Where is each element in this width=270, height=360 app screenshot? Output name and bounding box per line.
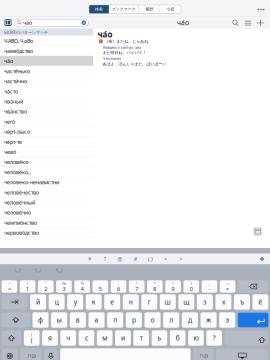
button[interactable]: в xyxy=(70,312,86,328)
button[interactable]: а xyxy=(88,312,105,328)
button[interactable]: о xyxy=(144,312,161,328)
button[interactable]: чва́нство xyxy=(0,106,93,117)
button[interactable]: Shift xyxy=(2,331,21,345)
button[interactable]: чва́ный xyxy=(0,96,93,106)
button[interactable]: м xyxy=(97,330,112,346)
button[interactable]: челове́чество xyxy=(0,187,93,197)
button[interactable]: Keyboard settings xyxy=(258,253,266,264)
button[interactable]: д xyxy=(182,312,198,328)
button[interactable]: ? xyxy=(97,253,112,264)
button[interactable]: у xyxy=(67,294,83,310)
button[interactable]: Caps lock xyxy=(2,313,30,327)
button[interactable]: б xyxy=(170,330,185,346)
button[interactable]: ! xyxy=(20,280,35,293)
button[interactable]: х xyxy=(215,294,231,310)
button[interactable]: челове́чный xyxy=(0,197,93,207)
button[interactable]: ✳ xyxy=(82,253,97,264)
button[interactable]: ч xyxy=(60,330,76,346)
button[interactable]: л xyxy=(163,312,179,328)
button[interactable]: Switch keyboard xyxy=(2,349,18,360)
button[interactable]: _ xyxy=(202,280,217,293)
button[interactable]: чёрт-те xyxy=(0,137,93,147)
button[interactable]: щ xyxy=(178,294,194,310)
button[interactable]: Shift xyxy=(225,331,268,345)
button[interactable]: More xyxy=(257,9,264,10)
button[interactable]: ча́сто xyxy=(0,86,93,96)
button[interactable]: е xyxy=(104,294,120,310)
button[interactable]: я xyxy=(42,330,58,346)
button[interactable]: челове́ко... xyxy=(0,167,93,177)
button[interactable]: : xyxy=(92,280,108,293)
button[interactable]: з xyxy=(197,294,213,310)
button[interactable]: Open in window xyxy=(253,227,262,236)
button[interactable]: ш xyxy=(160,294,176,310)
button[interactable]: ? xyxy=(206,330,222,346)
button[interactable]: 履歴 xyxy=(139,5,160,13)
button[interactable]: ( ) xyxy=(143,253,158,264)
button[interactable]: н xyxy=(123,294,139,310)
button[interactable]: " xyxy=(38,280,54,293)
button[interactable]: и xyxy=(115,330,131,346)
button[interactable]: * xyxy=(147,280,163,293)
button[interactable]: .?123 xyxy=(193,348,213,360)
button[interactable]: > xyxy=(2,280,17,293)
button[interactable] xyxy=(60,348,190,360)
button[interactable]: # xyxy=(128,253,143,264)
button[interactable]: человеко-ненавистни xyxy=(0,177,93,187)
button[interactable]: часте́нько xyxy=(0,66,93,76)
button[interactable]: ь xyxy=(152,330,167,346)
button[interactable]: челове́чно xyxy=(0,207,93,218)
button[interactable]: части́чно xyxy=(0,76,93,86)
button[interactable]: Undo xyxy=(13,264,22,276)
button[interactable]: г xyxy=(141,294,157,310)
button[interactable]: Add bookmark xyxy=(257,20,264,26)
button[interactable]: ; xyxy=(111,280,126,293)
button[interactable]: Tab xyxy=(2,295,28,309)
button[interactable]: Paste xyxy=(55,264,64,276)
button[interactable]: ж xyxy=(200,312,217,328)
button[interactable]: ( xyxy=(165,280,181,293)
button[interactable]: ц xyxy=(49,294,65,310)
button[interactable]: ЧАВО, ЧаВо xyxy=(0,36,93,46)
button[interactable]: № xyxy=(56,280,72,293)
button[interactable]: Dictate xyxy=(44,349,58,360)
button[interactable]: % xyxy=(74,280,90,293)
button[interactable]: т xyxy=(133,330,149,346)
button[interactable]: чёрт-лы́со xyxy=(0,127,93,137)
button[interactable]: с xyxy=(79,330,94,346)
button[interactable]: червово́дство xyxy=(0,228,93,238)
button[interactable]: > xyxy=(173,253,188,264)
button[interactable]: чего́ xyxy=(0,117,93,127)
button[interactable]: Redo xyxy=(34,264,43,276)
button[interactable]: р xyxy=(126,312,142,328)
button[interactable]: ブックマーク xyxy=(109,5,138,13)
button[interactable]: к xyxy=(86,294,102,310)
button[interactable]: .?123 xyxy=(20,348,42,360)
button[interactable]: ы xyxy=(51,312,67,328)
button[interactable]: чаево́дство xyxy=(0,46,93,56)
button[interactable]: э xyxy=(219,312,235,328)
button[interactable]: ) xyxy=(183,280,199,293)
button[interactable]: чемпио́нство xyxy=(0,218,93,228)
button[interactable]: ча́о xyxy=(14,19,88,26)
button[interactable]: 検索 xyxy=(89,5,109,13)
button[interactable]: { xyxy=(24,330,39,346)
button[interactable]: 小窓 xyxy=(160,5,181,13)
button[interactable]: Return xyxy=(238,313,268,327)
button[interactable]: Find xyxy=(232,20,239,26)
button[interactable]: Toggle sidebar xyxy=(4,19,11,26)
button[interactable]: ча́о xyxy=(0,56,93,66)
button[interactable]: ъ xyxy=(234,294,250,310)
button[interactable]: ю xyxy=(188,330,204,346)
button[interactable]: Table of contents xyxy=(245,20,251,26)
button[interactable]: п xyxy=(107,312,123,328)
button[interactable]: ф xyxy=(32,312,49,328)
button[interactable]: челове́ко- xyxy=(0,157,93,167)
button[interactable]: Delete xyxy=(238,280,268,293)
button[interactable]: Hide keyboard xyxy=(216,349,268,360)
button[interactable]: ? xyxy=(129,280,144,293)
button[interactable]: ё xyxy=(252,294,268,310)
button[interactable]: й xyxy=(30,294,46,310)
button[interactable]: + xyxy=(220,280,235,293)
button[interactable]: чево́ xyxy=(0,147,93,157)
